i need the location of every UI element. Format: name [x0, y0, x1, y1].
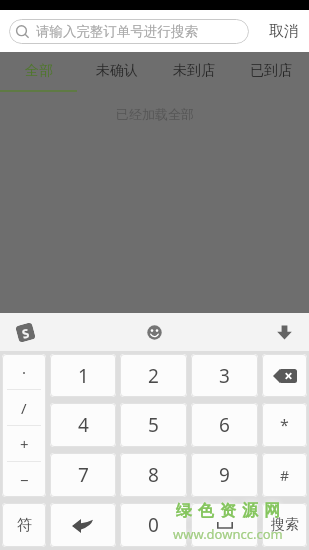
staticText: 取消	[269, 22, 299, 41]
button[interactable]	[262, 354, 307, 397]
button[interactable]: 搜索	[262, 503, 307, 547]
button[interactable]	[191, 503, 258, 547]
button[interactable]: 5	[120, 403, 187, 447]
staticText: 6	[219, 412, 230, 438]
staticText: 已经加载全部	[116, 106, 194, 122]
button[interactable]: 0	[120, 503, 187, 547]
button[interactable]: S	[0, 313, 50, 351]
staticText: 5	[148, 412, 159, 438]
button[interactable]: 2	[120, 354, 187, 397]
staticText: 未到店	[173, 62, 215, 80]
staticText: 绿色资源网	[173, 501, 283, 521]
button[interactable]: 全部	[0, 52, 78, 90]
staticText: 请输入完整订单号进行搜索	[36, 23, 198, 40]
button[interactable]: 取消	[249, 10, 309, 52]
button[interactable]: 8	[120, 453, 187, 497]
staticText: *	[280, 414, 289, 436]
staticText: 未确认	[96, 62, 138, 80]
staticText: ·	[22, 362, 27, 382]
staticText: −	[20, 470, 29, 490]
button[interactable]: #	[262, 453, 307, 497]
staticText: 已到店	[250, 62, 292, 80]
button[interactable]: −	[2, 462, 46, 497]
staticText: 1	[78, 363, 89, 389]
button[interactable]: 未到店	[155, 52, 232, 90]
button[interactable]: 已到店	[232, 52, 309, 90]
button[interactable]: 9	[191, 453, 258, 497]
staticText: 8	[148, 462, 159, 488]
staticText: /	[21, 398, 27, 418]
button[interactable]	[50, 313, 259, 351]
button[interactable]: 4	[50, 403, 116, 447]
button[interactable]: ·	[2, 354, 46, 389]
button[interactable]: 未确认	[78, 52, 155, 90]
button[interactable]: 请输入完整订单号进行搜索	[9, 19, 249, 44]
button[interactable]	[259, 313, 309, 351]
staticText: 4	[78, 412, 89, 438]
staticText: 9	[219, 462, 230, 488]
staticText: 搜索	[271, 516, 299, 534]
staticText: 符	[17, 516, 32, 535]
staticText: 2	[148, 363, 159, 389]
staticText: +	[20, 434, 29, 454]
button[interactable]	[50, 503, 116, 547]
button[interactable]: /	[2, 390, 46, 425]
staticText: www.downcc.com	[173, 525, 283, 543]
staticText: 全部	[25, 62, 53, 80]
button[interactable]: *	[262, 403, 307, 447]
staticText: S	[20, 324, 31, 342]
button[interactable]: 3	[191, 354, 258, 397]
button[interactable]: +	[2, 426, 46, 461]
staticText: 3	[219, 363, 230, 389]
staticText: 0	[148, 512, 159, 538]
button[interactable]: 1	[50, 354, 116, 397]
staticText: #	[280, 466, 290, 485]
button[interactable]: 符	[2, 503, 46, 547]
staticText: 7	[78, 462, 89, 488]
button[interactable]: 7	[50, 453, 116, 497]
button[interactable]: 6	[191, 403, 258, 447]
